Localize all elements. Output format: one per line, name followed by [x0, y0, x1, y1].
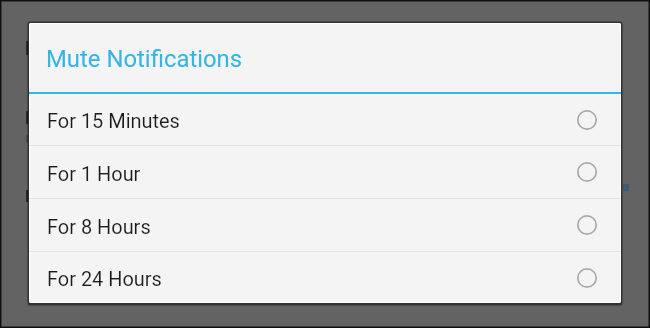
- staticText: For 24 Hours: [47, 267, 575, 290]
- button[interactable]: For 24 Hours: [29, 252, 621, 303]
- other: Select For 15 Minutes: [575, 108, 599, 132]
- staticText: For 1 Hour: [47, 162, 575, 185]
- staticText: Mute Notifications: [46, 45, 243, 73]
- other: Select For 1 Hour: [575, 160, 599, 184]
- staticText: For 8 Hours: [47, 215, 575, 238]
- other: Select For 8 Hours: [575, 213, 599, 237]
- button[interactable]: For 8 Hours: [29, 199, 621, 251]
- button[interactable]: For 15 Minutes: [29, 94, 621, 145]
- other: Select For 24 Hours: [575, 266, 599, 290]
- staticText: For 15 Minutes: [47, 109, 575, 132]
- button[interactable]: For 1 Hour: [29, 146, 621, 198]
